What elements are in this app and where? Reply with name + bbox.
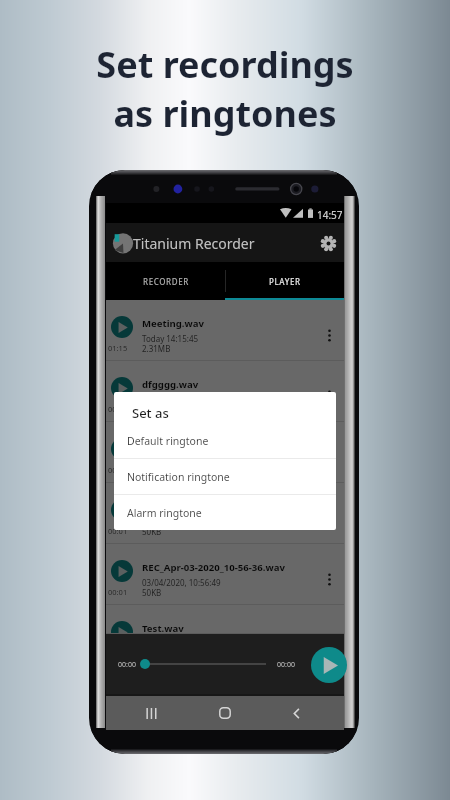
staticText: 00:01 [108,404,128,414]
button[interactable]: Play [311,647,347,683]
button[interactable]: More options [319,630,339,650]
staticText: Notification ringtone [127,470,230,484]
button[interactable]: Home [211,699,239,727]
button[interactable]: 00:01 [106,483,344,544]
button[interactable]: 00:01 [106,544,344,605]
button[interactable]: More options [319,508,339,528]
staticText: REC_Apr-03-2020_10-57-02.wav [142,500,285,513]
staticText: 00:00 [277,660,295,670]
button[interactable]: 01:15 [106,300,344,361]
staticText: Today 14:15:45 [142,333,199,344]
staticText: 00:01 [108,465,128,475]
staticText: 00:01 [108,526,128,536]
staticText: 14:57 [317,208,343,222]
staticText: 50KB [142,587,162,598]
staticText: Meeting.wav [142,317,204,330]
button[interactable]: Back [282,699,310,727]
staticText: 03/04/2020, 10:56:49 [142,577,221,588]
staticText: Default ringtone [127,434,209,448]
button[interactable]: Alarm ringtone [114,495,336,530]
button[interactable]: More options [319,325,339,345]
staticText: PLAYER [269,276,301,287]
staticText: REC_Apr-03-2020_10-57-09.wav [142,439,285,452]
staticText: Set recordings [96,40,354,89]
staticText: as ringtones [113,89,337,138]
staticText: 03/04/2020, 10:57:02 [142,516,221,527]
button[interactable]: Notification ringtone [114,459,336,494]
staticText: 50KB [142,465,162,476]
button[interactable]: PLAYER [225,262,344,300]
staticText: 00:01 [108,587,128,597]
staticText: Alarm ringtone [127,506,202,520]
button[interactable]: More options [319,569,339,589]
staticText: 01:15 [108,343,128,353]
staticText: Titanium Recorder [133,234,255,253]
button[interactable]: RECORDER [106,262,225,300]
staticText: REC_Apr-03-2020_10-56-36.wav [142,561,285,574]
staticText: Test.wav [142,622,184,635]
staticText: 50KB [142,404,162,415]
button[interactable]: Recents [137,699,165,727]
button[interactable]: 00:01 [106,422,344,483]
button[interactable]: Default ringtone [114,423,336,458]
button[interactable]: Settings [315,230,341,256]
staticText: 00:00 [118,660,136,670]
staticText: Set as [132,404,169,422]
button[interactable]: 00:01 [106,605,344,634]
staticText: dfgggg.wav [142,378,199,391]
button[interactable]: More options [319,386,339,406]
button[interactable]: More options [319,447,339,467]
staticText: RECORDER [143,276,189,287]
button[interactable]: 00:01 [106,361,344,422]
staticText: 2.31MB [142,343,171,354]
staticText: 03/04/2020, 10:57:09 [142,455,221,466]
staticText: 50KB [142,526,162,537]
